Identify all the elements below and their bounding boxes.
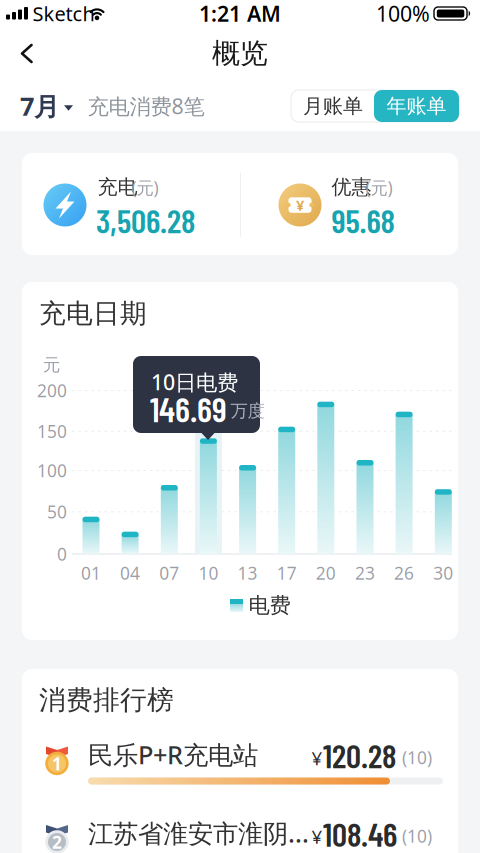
staticText: 146.69 xyxy=(150,388,227,429)
staticText: (元) xyxy=(131,176,158,199)
button[interactable]: 1 xyxy=(22,728,458,790)
staticText: 100% xyxy=(376,0,430,28)
staticText: 30 xyxy=(433,561,453,584)
staticText: 0 xyxy=(57,542,67,565)
staticText: 2 xyxy=(52,830,62,853)
staticText: 年账单 xyxy=(386,94,446,118)
staticText: 17 xyxy=(277,561,297,584)
staticText: 万度 xyxy=(230,400,264,422)
staticText: 13 xyxy=(238,561,258,584)
staticText: 概览 xyxy=(212,36,268,71)
staticText: 民乐P+R充电站 xyxy=(88,738,258,771)
staticText: 充电 xyxy=(97,175,137,199)
staticText: 10 xyxy=(198,561,218,584)
staticText: 23 xyxy=(355,561,375,584)
staticText: 200 xyxy=(37,379,67,402)
staticText: 04 xyxy=(120,561,140,584)
staticText: Sketch xyxy=(32,0,94,27)
staticText: (元) xyxy=(365,176,392,199)
staticText: 150 xyxy=(37,420,67,443)
staticText: 1 xyxy=(52,752,62,775)
staticText: 月账单 xyxy=(303,94,363,118)
staticText: (10) xyxy=(402,746,432,769)
staticText: 优惠 xyxy=(331,175,371,199)
button[interactable]: 月账单 xyxy=(291,90,375,122)
staticText: ¥ xyxy=(311,746,322,770)
staticText: 江苏省淮安市淮阴... xyxy=(88,816,309,850)
staticText: 充电消费8笔 xyxy=(87,92,204,120)
staticText: 3,506.28 xyxy=(96,200,195,240)
staticText: 20 xyxy=(316,561,336,584)
staticText: ¥ xyxy=(311,824,322,849)
staticText: 消费排行榜 xyxy=(39,684,174,716)
staticText: 26 xyxy=(394,561,414,584)
staticText: 7月 xyxy=(20,89,59,123)
staticText: 120.28 xyxy=(323,735,396,775)
staticText: (10) xyxy=(402,824,432,847)
button[interactable]: 7月 xyxy=(20,86,73,126)
staticText: 100 xyxy=(37,459,67,482)
button[interactable]: 2 xyxy=(22,806,458,853)
button[interactable]: 年账单 xyxy=(374,90,459,122)
staticText: 10日电费 xyxy=(151,368,238,396)
staticText: 50 xyxy=(47,500,67,523)
staticText: 元 xyxy=(43,354,60,376)
button[interactable] xyxy=(6,31,48,76)
staticText: 108.46 xyxy=(323,813,397,853)
staticText: 07 xyxy=(159,561,179,584)
staticText: 充电日期 xyxy=(39,297,147,330)
staticText: 95.68 xyxy=(331,200,394,240)
staticText: ¥ xyxy=(296,195,304,215)
staticText: 电费 xyxy=(248,592,290,619)
staticText: 1:21 AM xyxy=(199,0,281,28)
staticText: 01 xyxy=(81,561,101,584)
